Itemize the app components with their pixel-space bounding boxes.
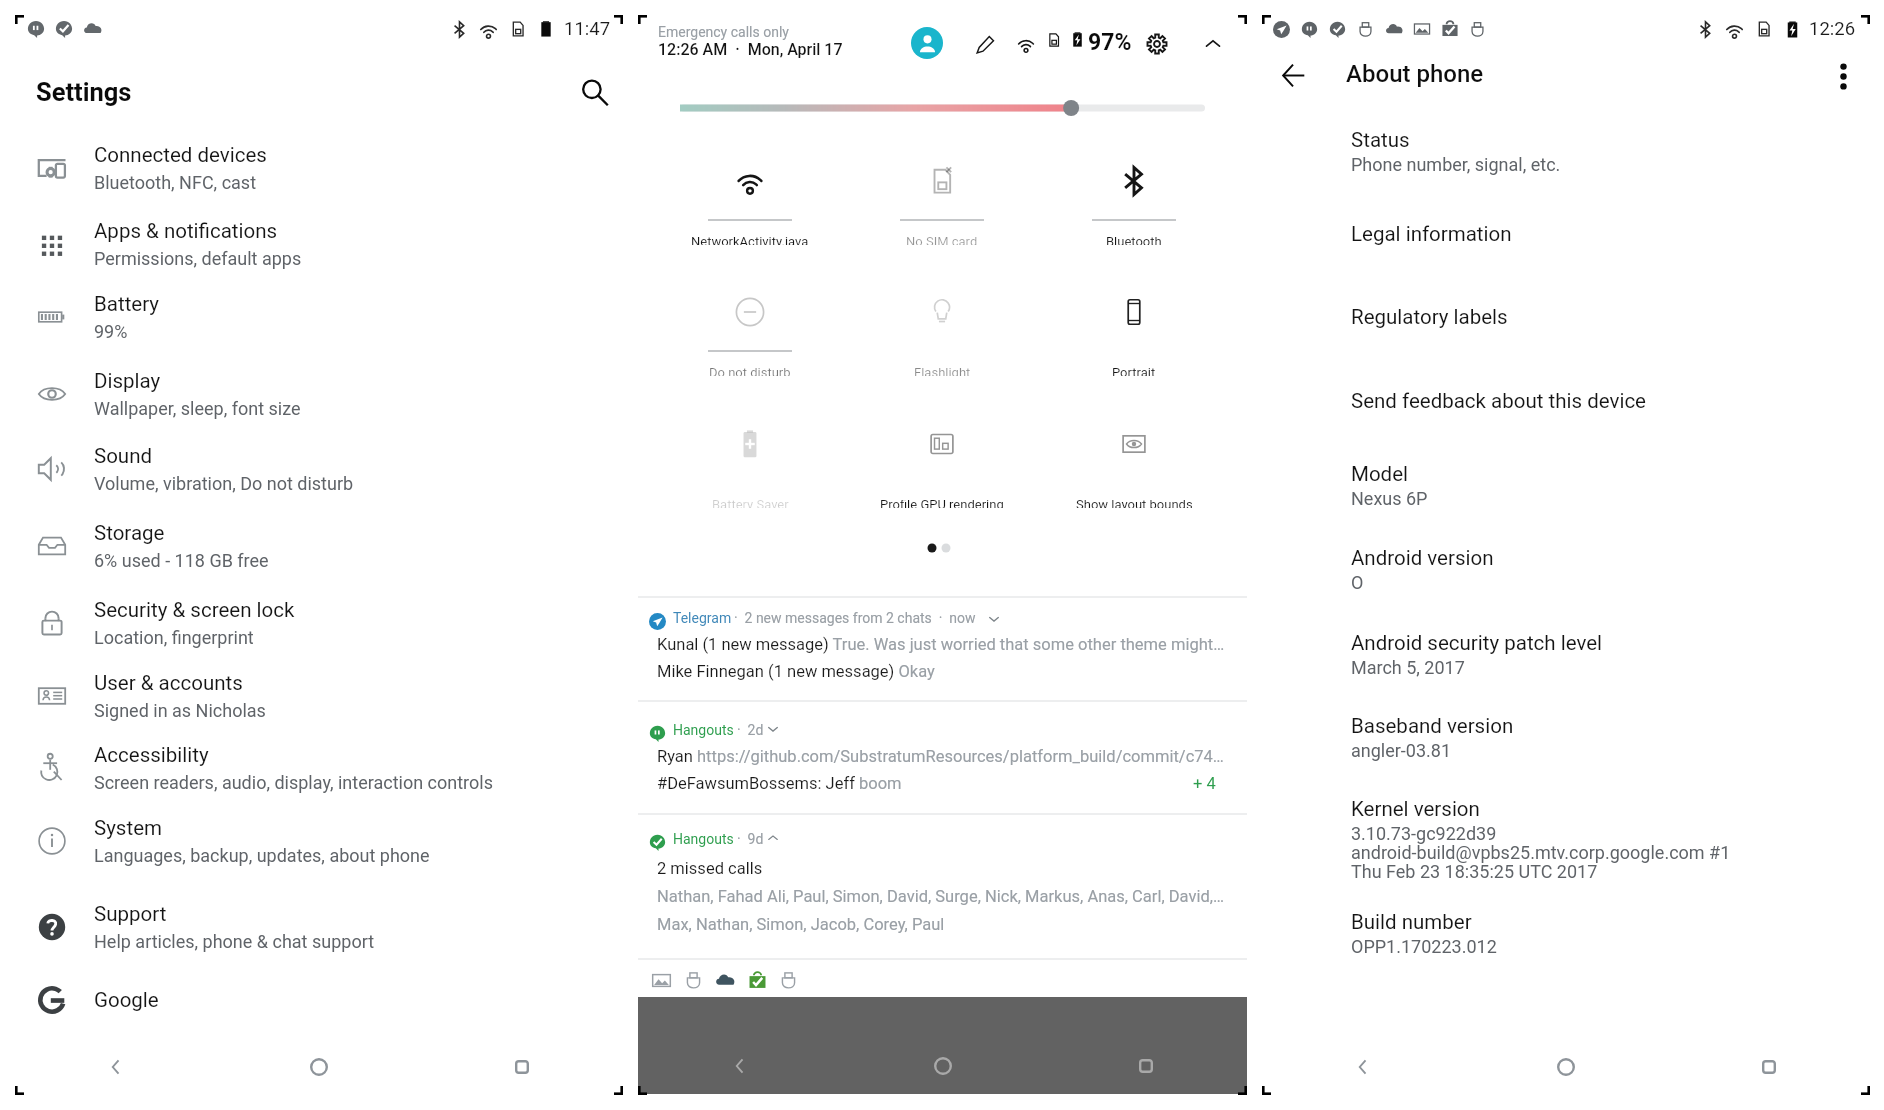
staticText: 97% bbox=[1088, 29, 1132, 56]
button[interactable]: Flashlight bbox=[857, 268, 1027, 386]
staticText: March 5, 2017 bbox=[1351, 657, 1465, 678]
button[interactable]: User & accounts bbox=[15, 655, 623, 729]
button[interactable]: No SIM card bbox=[857, 137, 1027, 255]
staticText: Languages, backup, updates, about phone bbox=[94, 845, 430, 866]
staticText: Battery bbox=[94, 292, 160, 316]
button[interactable]: Status bbox=[1262, 116, 1870, 186]
button[interactable]: Storage bbox=[15, 505, 623, 579]
button[interactable]: User bbox=[911, 27, 943, 59]
button[interactable]: Back bbox=[15, 1036, 217, 1098]
button[interactable]: Search bbox=[572, 70, 616, 114]
staticText: Regulatory labels bbox=[1351, 305, 1508, 329]
staticText: Nexus 6P bbox=[1351, 488, 1428, 509]
button[interactable]: Collapse bbox=[1198, 29, 1228, 59]
button[interactable]: Back bbox=[1268, 50, 1318, 100]
staticText: Accessibility bbox=[94, 743, 209, 767]
staticText: android-build@vpbs25.mtv.corp.google.com… bbox=[1351, 842, 1731, 863]
staticText: Nathan, Fahad Ali, Paul, Simon, David, S… bbox=[657, 887, 1225, 906]
staticText: + 4 bbox=[1193, 774, 1216, 793]
staticText: Android security patch level bbox=[1351, 631, 1603, 655]
staticText: OPP1.170223.012 bbox=[1351, 936, 1497, 957]
staticText: Help articles, phone & chat support bbox=[94, 931, 375, 952]
staticText: Apps & notifications bbox=[94, 219, 278, 243]
staticText: Max, Nathan, Simon, Jacob, Corey, Paul bbox=[657, 915, 945, 934]
staticText: 2 missed calls bbox=[657, 859, 763, 878]
button[interactable]: System bbox=[15, 800, 623, 874]
button[interactable]: Battery Saver bbox=[665, 400, 835, 518]
button[interactable]: Telegram notification bbox=[638, 598, 1247, 699]
staticText: Volume, vibration, Do not disturb bbox=[94, 473, 354, 494]
button[interactable]: Support bbox=[15, 886, 623, 960]
staticText: Telegram bbox=[673, 610, 732, 626]
staticText: Bluetooth, NFC, cast bbox=[94, 172, 257, 193]
staticText: #DeFawsumBossems: Jeff boom bbox=[657, 774, 902, 793]
staticText: User & accounts bbox=[94, 671, 243, 695]
button[interactable]: Home bbox=[1464, 1036, 1667, 1098]
staticText: About phone bbox=[1346, 60, 1484, 88]
button[interactable]: Legal information bbox=[1262, 210, 1870, 280]
button[interactable]: Back bbox=[638, 1035, 841, 1095]
staticText: No SIM card bbox=[906, 237, 978, 245]
staticText: Portrait bbox=[1112, 368, 1156, 376]
staticText: Status bbox=[1351, 128, 1410, 152]
button[interactable]: Model bbox=[1262, 450, 1870, 520]
staticText: Kernel version bbox=[1351, 797, 1480, 821]
staticText: Baseband version bbox=[1351, 714, 1514, 738]
button[interactable]: More options bbox=[1819, 52, 1867, 100]
button[interactable]: Kernel version bbox=[1262, 785, 1870, 855]
staticText: 6% used - 118 GB free bbox=[94, 550, 269, 571]
staticText: Sound bbox=[94, 444, 153, 468]
button[interactable]: Send feedback about this device bbox=[1262, 377, 1870, 447]
button[interactable]: Home bbox=[217, 1036, 420, 1098]
button[interactable]: Battery bbox=[15, 276, 623, 350]
staticText: Support bbox=[94, 902, 167, 926]
staticText: Battery Saver bbox=[712, 500, 789, 508]
button[interactable]: Hangouts notification bbox=[638, 702, 1247, 812]
button[interactable]: Regulatory labels bbox=[1262, 293, 1870, 363]
button[interactable]: Recents bbox=[1044, 1035, 1247, 1095]
button[interactable]: Back bbox=[1262, 1036, 1464, 1098]
button[interactable]: Google bbox=[15, 972, 623, 1046]
staticText: Hangouts bbox=[673, 831, 734, 847]
button[interactable]: Edit bbox=[970, 29, 1000, 59]
staticText: · 2 new messages from 2 chats · now bbox=[727, 610, 976, 626]
button[interactable]: Accessibility bbox=[15, 727, 623, 801]
button[interactable]: Profile GPU rendering bbox=[857, 400, 1027, 518]
button[interactable]: Show layout bounds bbox=[1049, 400, 1219, 518]
staticText: Connected devices bbox=[94, 143, 267, 167]
staticText: Show layout bounds bbox=[1076, 500, 1193, 508]
button[interactable]: Baseband version bbox=[1262, 702, 1870, 772]
staticText: Emergency calls only bbox=[658, 24, 789, 40]
staticText: · 9d bbox=[730, 831, 764, 847]
button[interactable]: Apps & notifications bbox=[15, 203, 623, 277]
staticText: 12:26 AM · Mon, April 17 bbox=[658, 40, 843, 59]
button[interactable]: Hangouts missed calls notification bbox=[638, 815, 1247, 957]
staticText: Wallpaper, sleep, font size bbox=[94, 398, 301, 419]
staticText: Ryan https://github.com/SubstratumResour… bbox=[657, 747, 1224, 766]
button[interactable]: Android security patch level bbox=[1262, 619, 1870, 689]
staticText: 3.10.73-gc922d39 bbox=[1351, 823, 1497, 844]
staticText: Kunal (1 new message) True. Was just wor… bbox=[657, 635, 1225, 654]
staticText: Display bbox=[94, 369, 161, 393]
staticText: 99% bbox=[94, 321, 128, 342]
staticText: Settings bbox=[36, 77, 132, 107]
button[interactable]: Android version bbox=[1262, 534, 1870, 604]
staticText: Hangouts bbox=[673, 722, 734, 738]
button[interactable]: NetworkActivity.java bbox=[665, 137, 835, 255]
button[interactable]: Recents bbox=[420, 1036, 623, 1098]
staticText: O bbox=[1351, 572, 1364, 593]
staticText: Permissions, default apps bbox=[94, 248, 302, 269]
button[interactable]: Display bbox=[15, 353, 623, 427]
button[interactable]: Do not disturb bbox=[665, 268, 835, 386]
button[interactable]: Portrait bbox=[1049, 268, 1219, 386]
button[interactable]: Bluetooth bbox=[1049, 137, 1219, 255]
button[interactable]: Home bbox=[841, 1035, 1044, 1095]
button[interactable]: Recents bbox=[1667, 1036, 1870, 1098]
button[interactable]: Security & screen lock bbox=[15, 582, 623, 656]
button[interactable]: Build number bbox=[1262, 898, 1870, 968]
staticText: Signed in as Nicholas bbox=[94, 700, 266, 721]
button[interactable]: Settings bbox=[1142, 29, 1172, 59]
button[interactable]: Connected devices bbox=[15, 127, 623, 201]
button[interactable]: Sound bbox=[15, 428, 623, 502]
staticText: · 2d bbox=[730, 722, 764, 738]
